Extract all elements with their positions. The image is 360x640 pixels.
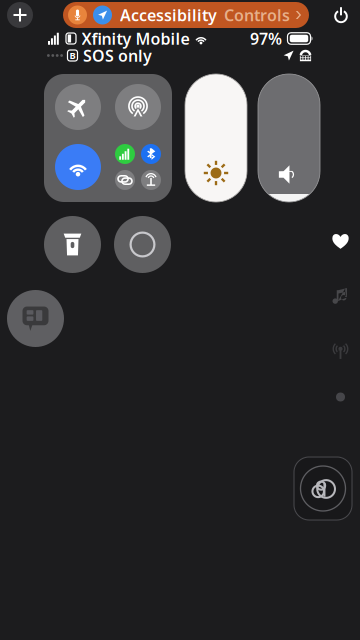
button[interactable]: Home controls	[327, 228, 353, 254]
button[interactable]: Accessibility Shortcuts	[294, 457, 352, 520]
staticText: SOS only	[83, 45, 152, 66]
staticText: Accessibility	[120, 4, 217, 26]
staticText: B	[69, 49, 75, 62]
button[interactable]: Connectivity page	[327, 338, 353, 364]
staticText: 97%	[250, 28, 282, 49]
button[interactable]: Power	[327, 1, 355, 29]
button[interactable]: Widget	[7, 290, 64, 347]
button[interactable]: Connectivity	[44, 74, 172, 202]
button[interactable]: Flashlight	[44, 216, 101, 273]
button[interactable]: Screen Recording	[114, 216, 171, 273]
button[interactable]: Now playing	[327, 283, 353, 309]
button[interactable]: Volume	[258, 74, 320, 202]
button[interactable]: Add	[7, 2, 33, 28]
button[interactable]: More	[327, 384, 353, 410]
button[interactable]: Brightness	[185, 74, 247, 202]
staticText: Xfinity Mobile	[81, 28, 189, 49]
button[interactable]: Accessibility	[63, 2, 309, 28]
staticText: Controls	[224, 4, 290, 26]
